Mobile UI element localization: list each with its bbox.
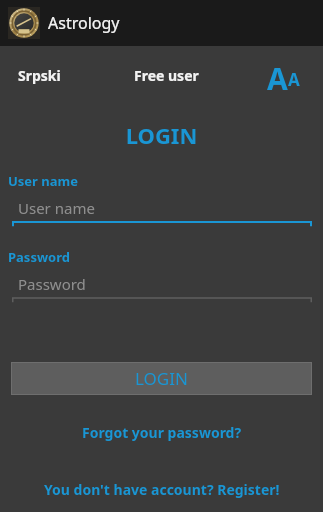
staticText: Password <box>18 274 86 294</box>
staticText: You don't have account? Register! <box>44 480 280 499</box>
staticText: Free user <box>134 66 199 85</box>
staticText: LOGIN <box>0 120 323 150</box>
staticText: User name <box>18 198 95 218</box>
button[interactable]: Free user <box>126 60 207 91</box>
button[interactable]: LOGIN <box>11 362 312 395</box>
button[interactable]: Password <box>0 248 323 304</box>
button[interactable]: Forgot your password? <box>0 417 323 448</box>
button[interactable]: You don't have account? Register! <box>0 474 323 505</box>
staticText: A <box>288 68 300 91</box>
staticText: A <box>267 58 288 92</box>
other: Astrology app icon <box>8 7 40 39</box>
button[interactable]: User name <box>0 172 323 228</box>
staticText: Astrology <box>48 12 120 34</box>
staticText: Forgot your password? <box>82 423 242 442</box>
button[interactable]: Change text size <box>263 54 315 96</box>
staticText: Srpski <box>18 66 61 85</box>
staticText: Password <box>8 248 70 266</box>
staticText: LOGIN <box>135 367 188 390</box>
button[interactable]: Srpski <box>10 60 69 91</box>
staticText: User name <box>8 172 78 190</box>
